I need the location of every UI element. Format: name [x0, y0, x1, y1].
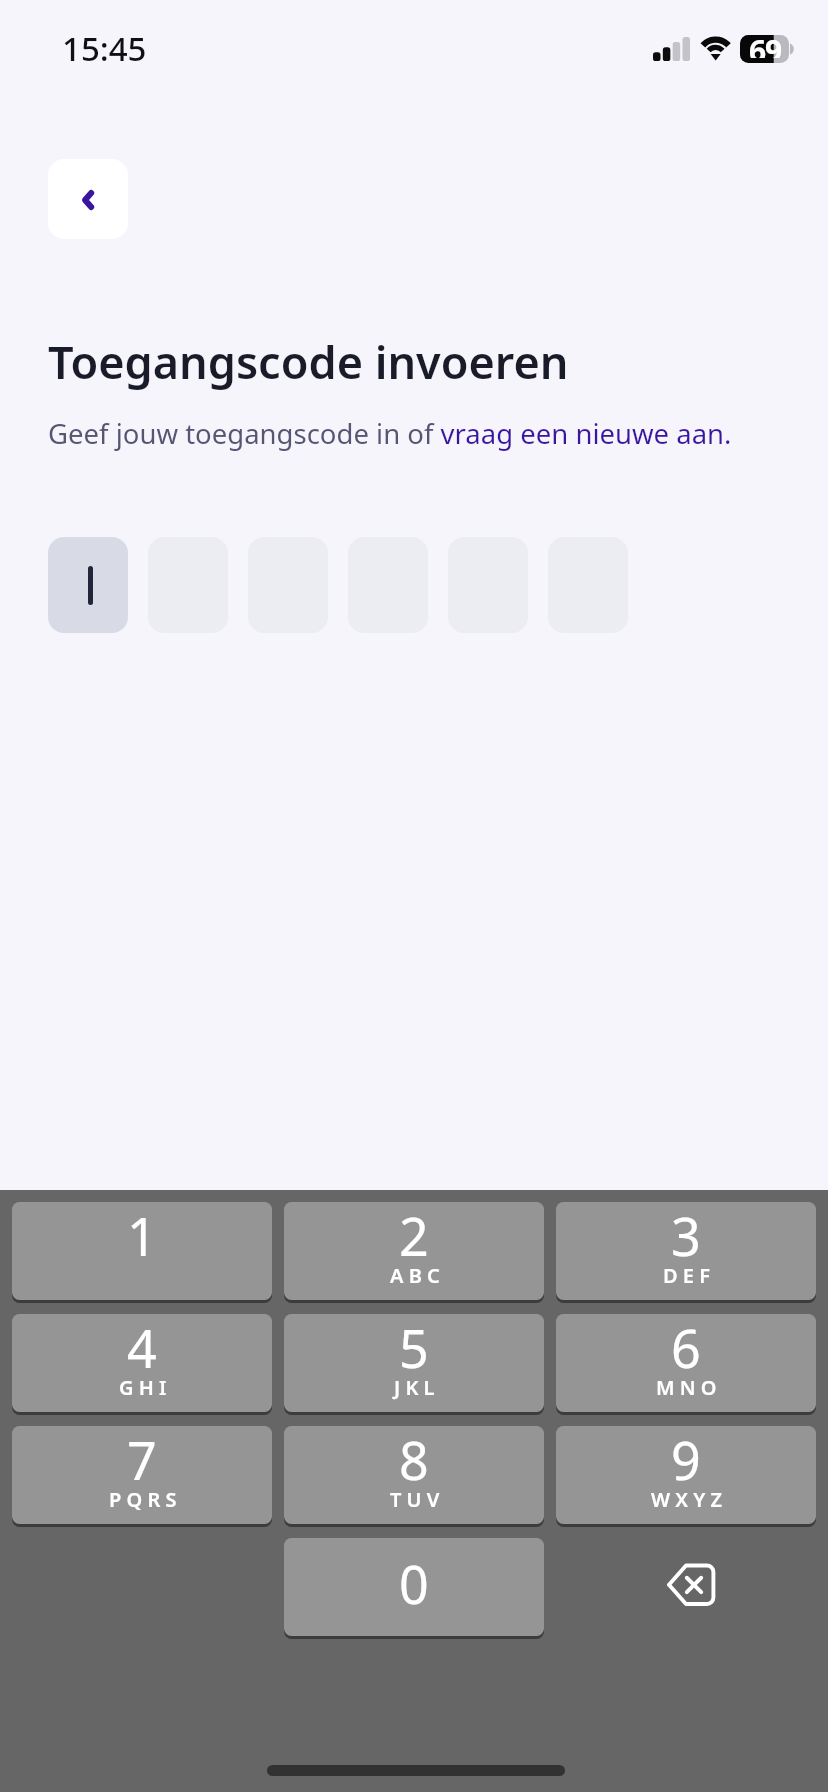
staticText: 3: [671, 1200, 701, 1271]
button[interactable]: Backspace: [556, 1538, 816, 1636]
staticText: ABC: [390, 1262, 445, 1289]
staticText: 9: [671, 1424, 701, 1495]
button[interactable]: 1: [12, 1202, 272, 1300]
button[interactable]: 2: [284, 1202, 544, 1300]
staticText: 69: [749, 30, 781, 58]
button[interactable]: 8: [284, 1426, 544, 1524]
staticText: 8: [399, 1424, 429, 1495]
staticText: GHI: [119, 1374, 172, 1401]
staticText: 15:45: [62, 26, 147, 71]
staticText: Toegangscode invoeren: [48, 331, 569, 392]
staticText: Geef jouw toegangscode in of vraag een n…: [48, 415, 732, 452]
staticText: 5: [399, 1312, 429, 1383]
staticText: 0: [399, 1548, 429, 1619]
staticText: TUV: [390, 1486, 445, 1513]
button[interactable]: 5: [284, 1314, 544, 1412]
staticText: WXYZ: [651, 1486, 728, 1513]
staticText: MNO: [656, 1374, 722, 1401]
button[interactable]: 6: [556, 1314, 816, 1412]
staticText: JKL: [394, 1374, 440, 1401]
staticText: 4: [127, 1312, 157, 1383]
staticText: 2: [399, 1200, 429, 1271]
staticText: DEF: [663, 1262, 716, 1289]
staticText: PQRS: [109, 1486, 182, 1513]
staticText: 6: [671, 1312, 701, 1383]
staticText: 7: [127, 1424, 157, 1495]
button[interactable]: 0: [284, 1538, 544, 1636]
button[interactable]: 7: [12, 1426, 272, 1524]
staticText: 1: [127, 1200, 157, 1271]
button[interactable]: 3: [556, 1202, 816, 1300]
button[interactable]: 9: [556, 1426, 816, 1524]
button[interactable]: 4: [12, 1314, 272, 1412]
button[interactable]: Back: [48, 159, 128, 239]
button[interactable]: [48, 537, 128, 633]
